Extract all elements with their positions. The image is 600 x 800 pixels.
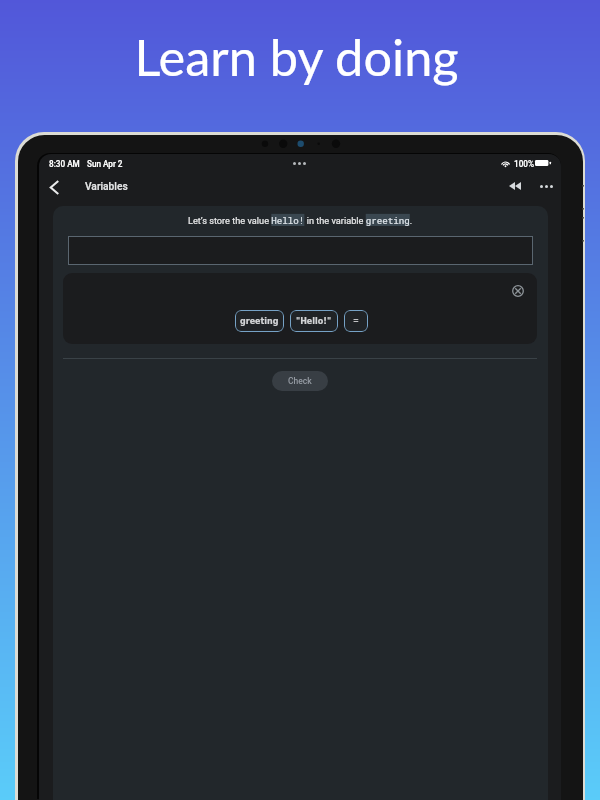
staticText: "Hello!"	[296, 317, 332, 326]
button[interactable]: greeting	[235, 310, 284, 332]
staticText: Sun Apr 2	[87, 159, 123, 169]
staticText: Let’s store the value Hello! in the vari…	[188, 214, 413, 226]
button[interactable]: Rewind	[505, 176, 525, 196]
button[interactable]: Back	[43, 176, 65, 198]
button[interactable]: Check	[272, 371, 328, 391]
button[interactable]: =	[344, 310, 368, 332]
button[interactable]: More options	[536, 176, 556, 196]
staticText: =	[353, 317, 359, 325]
staticText: 8:30 AM	[49, 159, 80, 169]
staticText: Learn by doing	[134, 26, 459, 87]
button[interactable]: Clear answer	[512, 285, 524, 297]
staticText: Check	[288, 376, 312, 386]
staticText: Variables	[85, 181, 128, 193]
staticText: 100%	[514, 159, 534, 169]
button[interactable]: "Hello!"	[290, 310, 338, 332]
staticText: greeting	[240, 317, 279, 326]
